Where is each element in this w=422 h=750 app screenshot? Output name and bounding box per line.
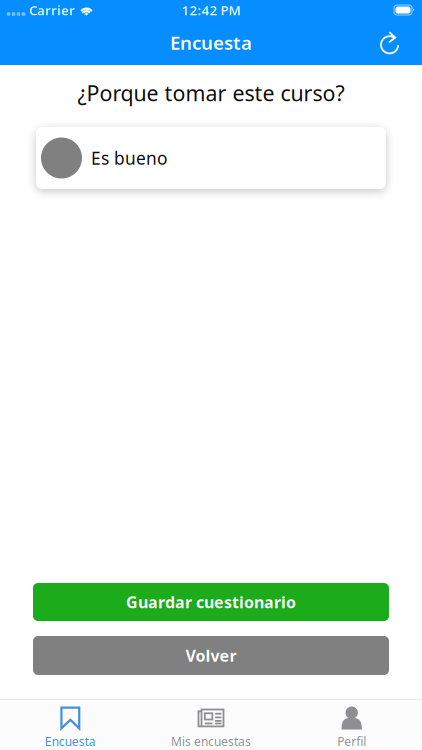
staticText: Mis encuestas (171, 733, 251, 749)
staticText: 12:42 PM (181, 1, 240, 19)
staticText: Perfil (337, 733, 366, 749)
staticText: Guardar cuestionario (126, 591, 296, 613)
staticText: Encuesta (45, 733, 96, 749)
button[interactable]: Es bueno (36, 127, 386, 189)
staticText: Es bueno (91, 146, 167, 169)
button[interactable]: Perfil (281, 699, 422, 750)
button[interactable]: Encuesta (0, 699, 141, 750)
button[interactable]: Refresh (368, 20, 422, 64)
button[interactable]: Volver (33, 636, 389, 675)
staticText: Encuesta (170, 30, 252, 55)
staticText: Carrier (29, 1, 75, 19)
button[interactable]: Mis encuestas (141, 699, 281, 750)
staticText: ¿Porque tomar este curso? (77, 79, 344, 107)
staticText: Volver (185, 645, 236, 666)
button[interactable]: Guardar cuestionario (33, 583, 389, 621)
